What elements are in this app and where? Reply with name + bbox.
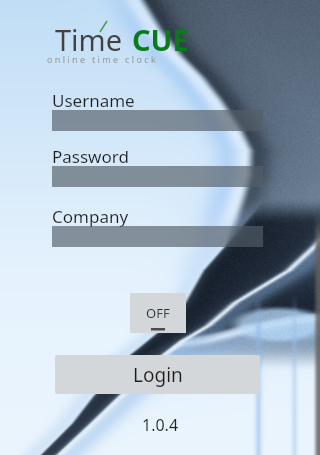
button[interactable]: Login <box>55 355 260 394</box>
button[interactable] <box>52 166 263 187</box>
staticText: CUE <box>132 20 189 59</box>
staticText: Time <box>55 20 123 59</box>
staticText: o n l i n e t i m e c l o c k <box>47 53 156 65</box>
button[interactable]: OFF <box>130 293 186 333</box>
staticText: Company <box>52 205 129 228</box>
staticText: Login <box>133 362 183 388</box>
staticText: OFF <box>146 304 170 322</box>
button[interactable] <box>52 226 263 247</box>
staticText: 1.0.4 <box>142 414 179 436</box>
staticText: Password <box>52 145 129 168</box>
button[interactable] <box>52 110 263 131</box>
staticText: Username <box>52 89 135 112</box>
